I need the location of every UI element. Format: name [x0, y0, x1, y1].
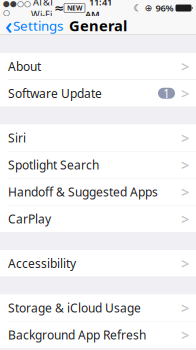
staticText: Storage & iCloud Usage: [8, 300, 141, 316]
staticText: 96%: [155, 2, 173, 14]
staticText: Handoff & Suggested Apps: [8, 184, 158, 200]
staticText: ●●○○○: [3, 0, 31, 17]
staticText: Settings: [13, 17, 63, 34]
button[interactable]: Storage & iCloud Usage: [0, 294, 196, 321]
staticText: About: [8, 58, 41, 74]
staticText: ‹: [5, 10, 12, 40]
staticText: Software Update: [8, 85, 102, 101]
staticText: Spotlight Search: [8, 157, 99, 173]
staticText: >: [181, 182, 189, 201]
staticText: Background App Refresh: [8, 327, 146, 343]
staticText: >: [181, 253, 189, 273]
staticText: General: [69, 16, 127, 35]
button[interactable]: Software Update: [0, 80, 196, 106]
staticText: >: [181, 83, 189, 103]
staticText: >: [181, 209, 189, 228]
staticText: >: [181, 56, 189, 76]
staticText: Accessibility: [8, 255, 76, 271]
staticText: ⊕: [141, 3, 155, 13]
button[interactable]: Handoff & Suggested Apps: [0, 178, 196, 205]
button[interactable]: Spotlight Search: [0, 151, 196, 178]
button[interactable]: Accessibility: [0, 250, 196, 276]
button[interactable]: Siri: [0, 124, 196, 151]
staticText: CarPlay: [8, 211, 51, 227]
staticText: >: [181, 298, 189, 317]
button[interactable]: Background App Refresh: [0, 321, 196, 348]
staticText: >: [181, 128, 189, 147]
button[interactable]: About: [0, 53, 196, 79]
staticText: ☾: [133, 3, 141, 13]
button[interactable]: CarPlay: [0, 205, 196, 232]
staticText: AT&T Wi-Fi: [31, 0, 54, 20]
staticText: >: [181, 325, 189, 344]
button[interactable]: ‹: [0, 8, 63, 42]
staticText: Siri: [8, 130, 26, 146]
staticText: 11:41 AM: [85, 0, 112, 20]
staticText: >: [181, 155, 189, 174]
staticText: ≈: [54, 1, 64, 15]
staticText: NEW: [65, 4, 84, 12]
staticText: 1: [163, 85, 170, 101]
